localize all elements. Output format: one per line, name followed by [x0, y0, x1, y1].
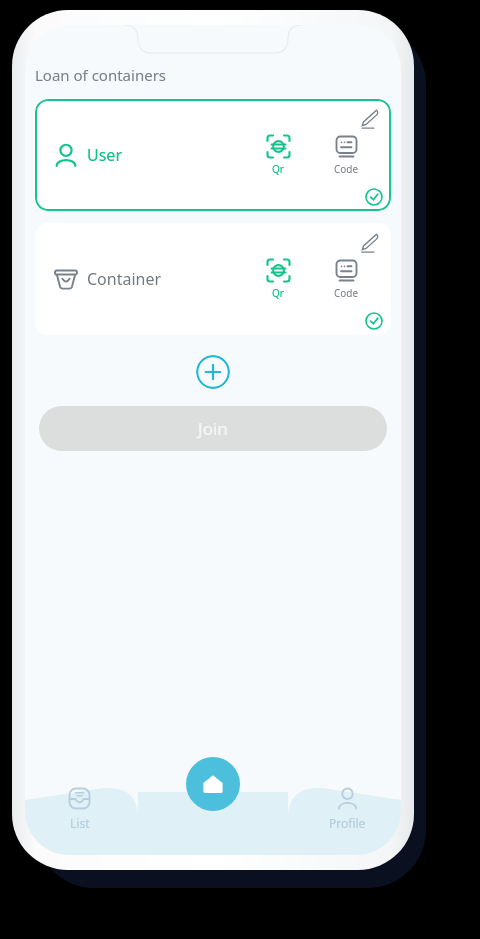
staticText: User — [87, 144, 122, 166]
button[interactable]: Edit — [357, 229, 383, 255]
button[interactable]: Home — [186, 757, 240, 811]
button[interactable]: List — [63, 782, 96, 835]
staticText: Code — [334, 162, 359, 176]
staticText: Qr — [272, 162, 284, 176]
staticText: Loan of containers — [35, 65, 167, 85]
staticText: Profile — [329, 815, 366, 831]
button[interactable]: Edit — [35, 223, 391, 335]
button[interactable]: Code — [319, 258, 373, 300]
staticText: Join — [198, 417, 228, 440]
button[interactable]: Edit — [357, 105, 383, 131]
staticText: Qr — [272, 286, 284, 300]
button[interactable]: Edit — [35, 99, 391, 211]
button[interactable]: Profile — [325, 782, 370, 835]
other: Confirmed — [365, 312, 383, 330]
button[interactable]: Code — [319, 134, 373, 176]
staticText: Code — [334, 286, 359, 300]
button[interactable]: Qr — [251, 134, 305, 176]
button[interactable]: Join — [39, 406, 387, 451]
staticText: List — [70, 815, 90, 831]
staticText: Container — [87, 268, 162, 290]
button[interactable]: Add — [196, 355, 230, 389]
button[interactable]: Qr — [251, 258, 305, 300]
other: Confirmed — [365, 188, 383, 206]
